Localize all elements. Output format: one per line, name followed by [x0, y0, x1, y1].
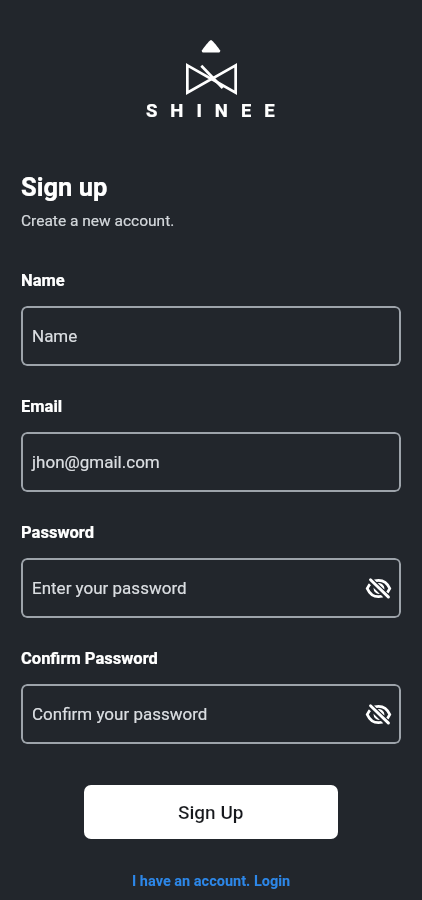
staticText: SHINEE — [146, 100, 288, 122]
staticText: Enter your password — [32, 578, 187, 598]
staticText: Sign Up — [178, 801, 244, 823]
staticText: Name — [32, 326, 78, 346]
button[interactable]: Confirm your password — [21, 684, 401, 744]
button[interactable]: jhon@gmail.com — [21, 432, 401, 492]
staticText: jhon@gmail.com — [32, 452, 160, 472]
button[interactable]: Sign Up — [84, 785, 338, 839]
button[interactable]: Enter your password — [21, 558, 401, 618]
staticText: Confirm your password — [32, 704, 208, 724]
staticText: Sign up — [21, 172, 108, 202]
button[interactable]: I have an account. Login — [132, 873, 291, 890]
button[interactable]: Toggle password visibility — [362, 698, 394, 730]
button[interactable]: Name — [21, 306, 401, 366]
staticText: Create a new account. — [21, 212, 175, 230]
staticText: Confirm Password — [21, 649, 158, 668]
staticText: Password — [21, 523, 95, 542]
staticText: Name — [21, 271, 65, 290]
staticText: Email — [21, 397, 63, 416]
button[interactable]: Toggle password visibility — [362, 572, 394, 604]
